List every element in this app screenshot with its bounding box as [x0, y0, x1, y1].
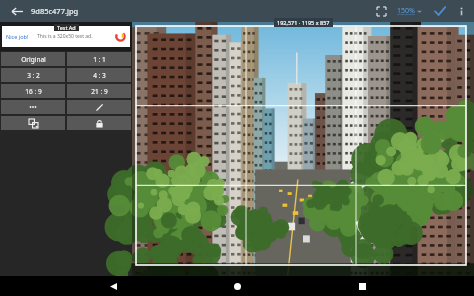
staticText: 1 : 1: [93, 55, 106, 64]
button[interactable]: 21 : 9: [67, 84, 131, 98]
staticText: This is a 320x50 test ad.: [37, 33, 93, 40]
button[interactable]: Info: [452, 2, 470, 20]
button[interactable]: Back: [6, 0, 28, 22]
staticText: 4 : 3: [93, 71, 106, 80]
button[interactable]: lock: [67, 116, 131, 130]
button[interactable]: 150%: [395, 6, 424, 16]
button[interactable]: 1 : 1: [67, 52, 131, 66]
button[interactable]: Nice job!: [2, 26, 130, 47]
staticText: 192,571 · 1195 x 857: [277, 19, 330, 26]
button[interactable]: Fullscreen: [371, 1, 391, 21]
staticText: 21 : 9: [91, 87, 108, 96]
button[interactable]: more: [1, 100, 65, 114]
staticText: 9d85c477.jpg: [31, 6, 79, 16]
staticText: Nice job!: [6, 33, 29, 40]
button[interactable]: pencil: [67, 100, 131, 114]
button[interactable]: Recents: [350, 276, 374, 296]
button[interactable]: Done: [430, 1, 450, 21]
button[interactable]: Original: [1, 52, 65, 66]
button[interactable]: 3 : 2: [1, 68, 65, 82]
button[interactable]: rotate: [1, 116, 65, 130]
button[interactable]: Home: [225, 276, 249, 296]
staticText: Original: [21, 55, 46, 64]
staticText: 150%: [397, 6, 415, 16]
button[interactable]: Back: [101, 276, 125, 296]
button[interactable]: 4 : 3: [67, 68, 131, 82]
staticText: 16 : 9: [25, 87, 42, 96]
button[interactable]: 16 : 9: [1, 84, 65, 98]
staticText: Test Ad: [57, 24, 76, 31]
staticText: 3 : 2: [27, 71, 40, 80]
